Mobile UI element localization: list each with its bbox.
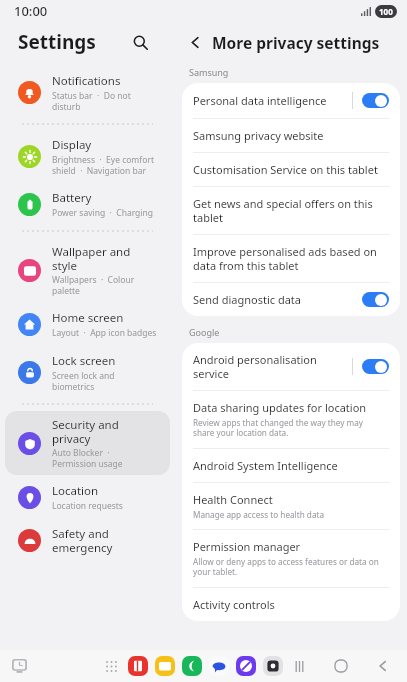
button[interactable]: App [209,656,229,676]
staticText: Brightness · Eye comfort shield · Naviga… [52,154,154,176]
button[interactable]: Lock screen [5,347,170,398]
staticText: Android personalisation service [193,352,317,381]
button[interactable]: Data sharing updates for location [182,391,400,448]
staticText: Improve personalised ads based on data f… [193,244,377,273]
staticText: 10:00 [14,2,48,20]
button[interactable]: Back [183,30,207,54]
staticText: Permission manager [193,539,301,554]
button[interactable]: App [236,656,256,676]
button[interactable]: Security and privacy [5,411,170,475]
button[interactable]: App [263,656,283,676]
staticText: Manage app access to health data [193,509,325,520]
staticText: Personal data intelligence [193,93,327,108]
button[interactable]: Toggle [362,359,389,374]
staticText: Home screen [52,310,124,326]
staticText: Wallpaper and style [52,244,131,273]
button[interactable]: App [182,656,202,676]
staticText: Screen lock and biometrics [52,370,115,392]
staticText: Safety and emergency [52,526,113,555]
staticText: Customisation Service on this tablet [193,162,378,177]
staticText: Settings [18,29,96,55]
staticText: Battery [52,190,92,206]
staticText: Lock screen [52,353,116,369]
button[interactable]: Recent [10,657,28,675]
button[interactable]: Personal data intelligence [182,83,400,118]
button[interactable]: Safety and emergency [5,520,170,561]
button[interactable]: Wallpaper and style [5,238,170,302]
staticText: More privacy settings [212,32,380,53]
button[interactable]: App [128,656,148,676]
button[interactable]: Toggle [362,292,389,307]
staticText: Power saving · Charging [52,207,153,219]
staticText: Allow or deny apps to access features or… [193,556,379,578]
staticText: 100 [379,6,393,17]
staticText: Location [52,483,99,499]
staticText: Security and privacy [52,417,119,446]
button[interactable]: Permission manager [182,530,400,587]
staticText: Status bar · Do not disturb [52,90,131,112]
staticText: Activity controls [193,597,275,612]
button[interactable]: Improve personalised ads based on data f… [182,235,400,282]
staticText: Get news and special offers on this tabl… [193,196,373,225]
staticText: Layout · App icon badges [52,327,157,339]
staticText: Samsung privacy website [193,128,324,143]
button[interactable]: Display [5,131,170,182]
button[interactable]: App [155,656,175,676]
button[interactable]: Activity controls [182,588,400,621]
staticText: Notifications [52,73,121,89]
button[interactable]: Android personalisation service [182,343,400,390]
button[interactable]: Android System Intelligence [182,449,400,482]
staticText: Display [52,137,92,153]
staticText: Google [189,326,220,338]
button[interactable]: Get news and special offers on this tabl… [182,187,400,234]
button[interactable]: Samsung privacy website [182,119,400,152]
button[interactable]: Apps [101,656,121,676]
button[interactable]: Back [373,656,393,676]
staticText: Data sharing updates for location [193,400,367,415]
button[interactable]: Search [127,29,153,55]
button[interactable]: Home [331,656,351,676]
button[interactable]: Toggle [362,93,389,108]
staticText: Location requests [52,500,123,512]
button[interactable]: Battery [5,184,170,225]
staticText: Health Connect [193,492,273,507]
button[interactable]: Health Connect [182,483,400,529]
button[interactable]: Location [5,477,170,518]
button[interactable]: Send diagnostic data [182,283,400,316]
staticText: Send diagnostic data [193,292,301,307]
button[interactable]: Home screen [5,304,170,345]
staticText: Samsung [189,66,229,78]
staticText: Wallpapers · Colour palette [52,274,135,296]
button[interactable]: Recents [289,656,309,676]
staticText: Review apps that changed the way they ma… [193,417,363,439]
staticText: Android System Intelligence [193,458,338,473]
staticText: Auto Blocker · Permission usage [52,447,123,469]
button[interactable]: Notifications [5,67,170,118]
button[interactable]: Customisation Service on this tablet [182,153,400,186]
